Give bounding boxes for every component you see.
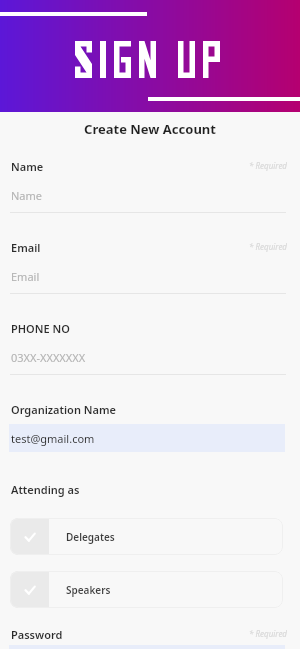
staticText: Attending as (11, 482, 80, 497)
button[interactable]: Delegates (10, 518, 283, 555)
staticText: Create New Account (0, 120, 300, 138)
staticText: test@gmail.com (11, 431, 95, 446)
staticText: Speakers (66, 583, 111, 597)
staticText: PHONE NO (11, 321, 70, 336)
button[interactable]: Name (0, 159, 300, 216)
staticText: Email (11, 240, 41, 255)
staticText: * Required (0, 241, 287, 252)
staticText: Delegates (66, 530, 115, 544)
staticText: Organization Name (11, 402, 116, 417)
button[interactable]: Speakers (10, 571, 283, 608)
staticText: Password (11, 627, 63, 642)
staticText: Name (11, 188, 43, 203)
staticText: * Required (0, 628, 287, 639)
staticText: 03XX-XXXXXXX (11, 350, 86, 365)
staticText: * Required (0, 160, 287, 171)
staticText: Email (11, 269, 40, 284)
button[interactable]: Organization Name (0, 402, 300, 451)
button[interactable]: PHONE NO (0, 321, 300, 378)
button[interactable]: Email (0, 240, 300, 297)
staticText: Name (11, 159, 44, 174)
